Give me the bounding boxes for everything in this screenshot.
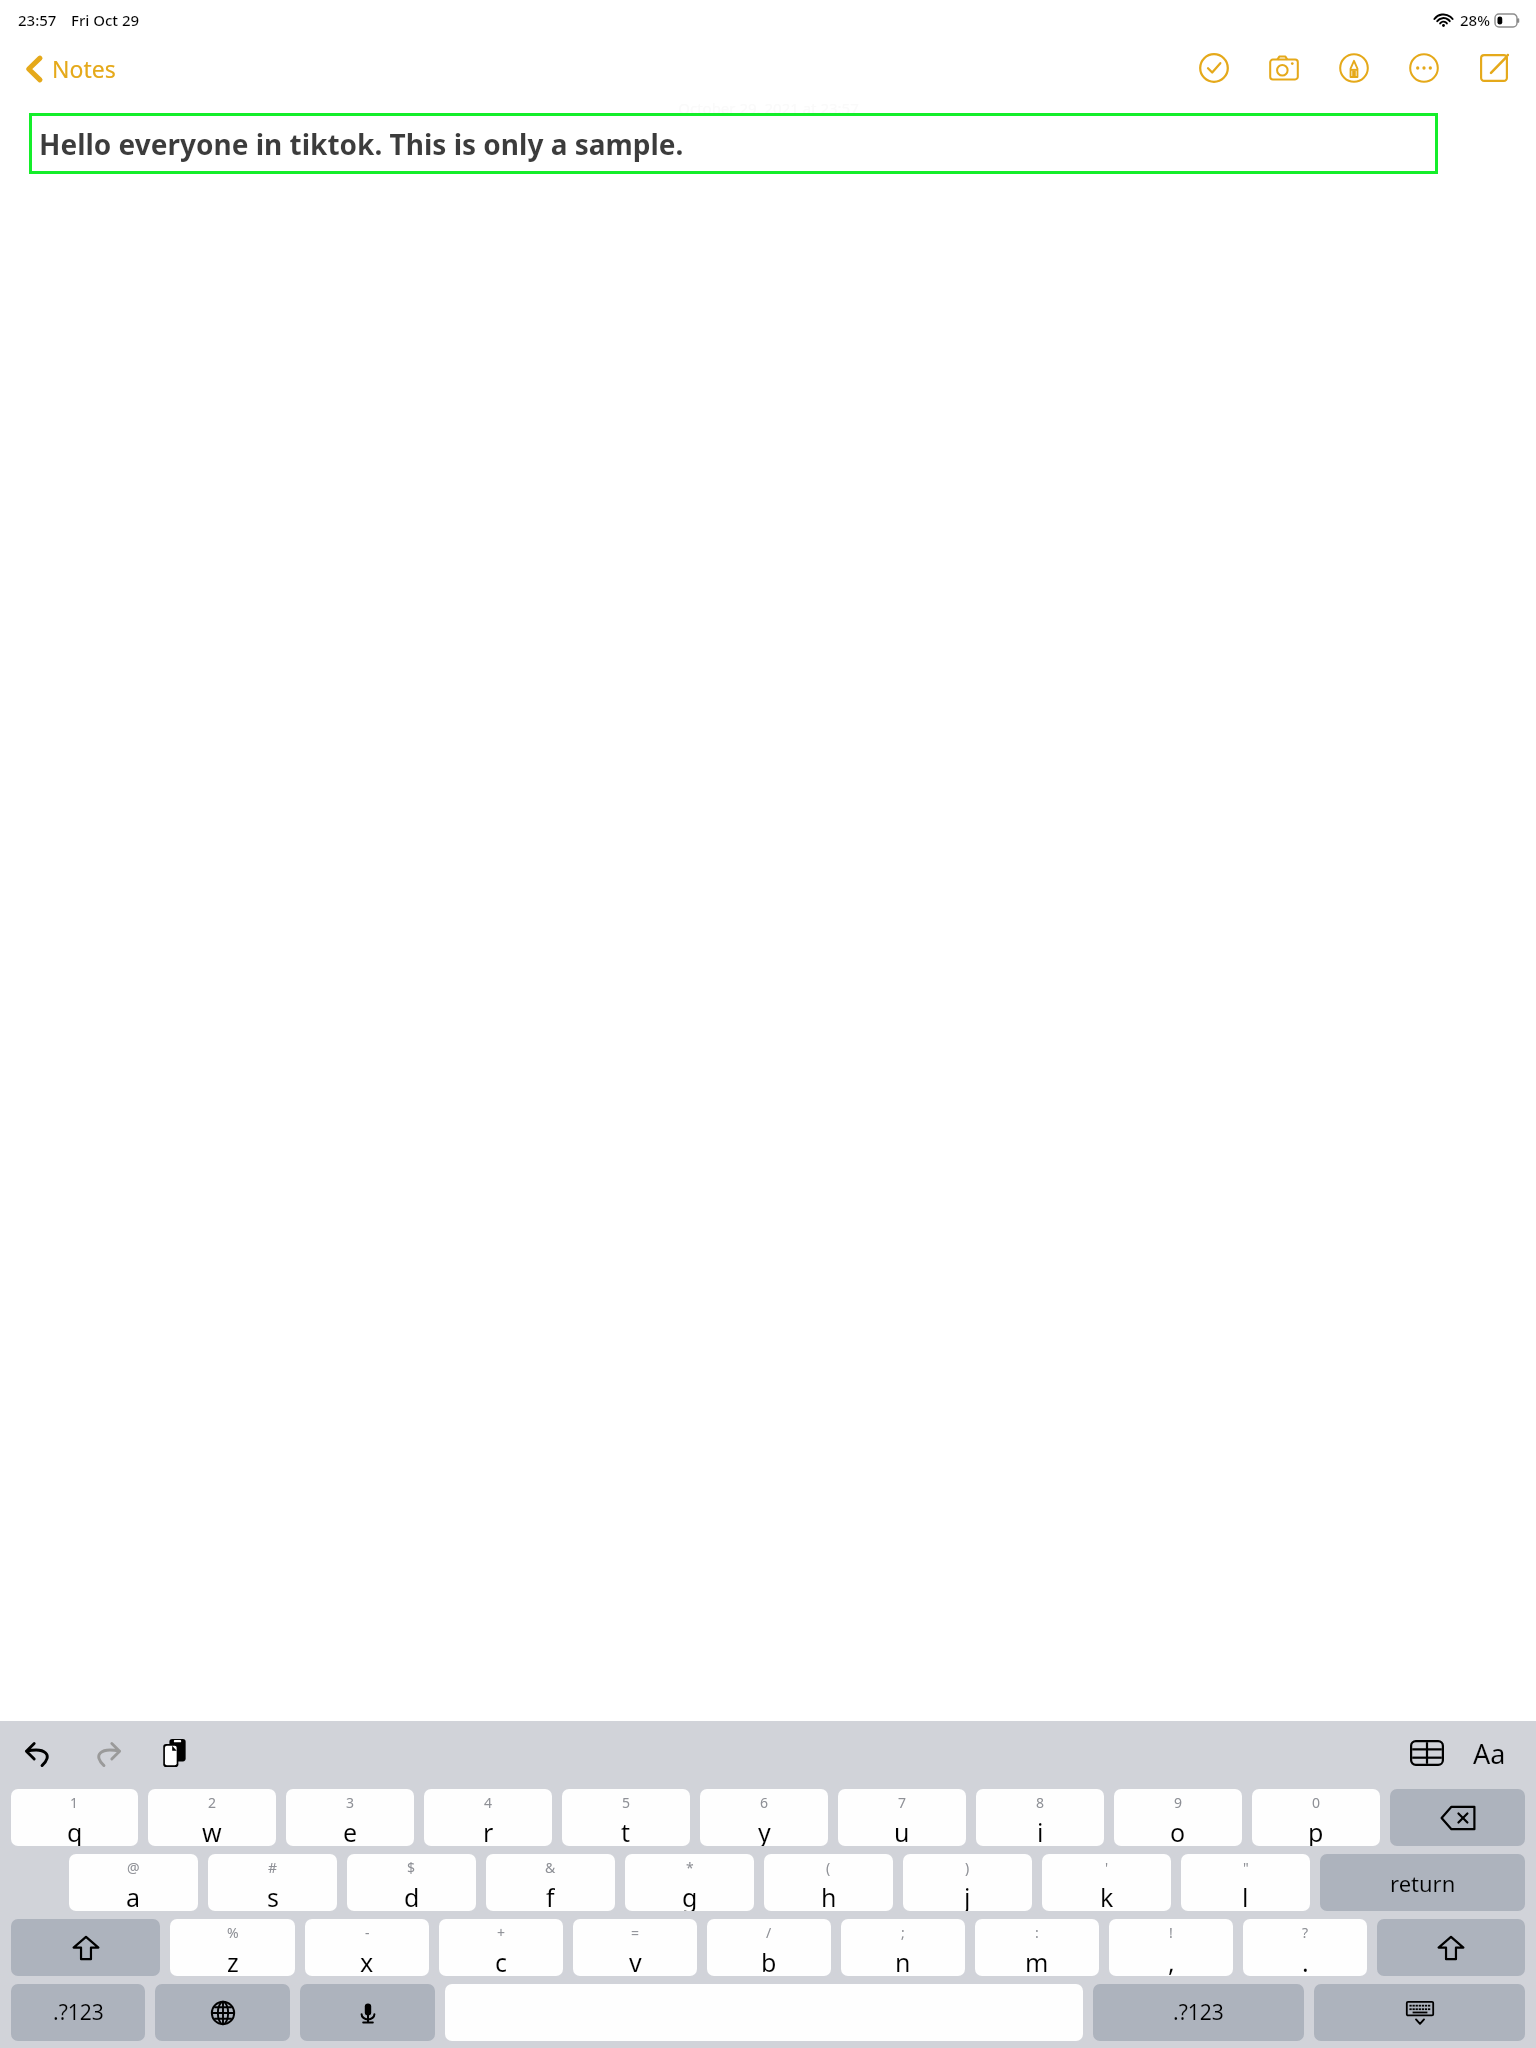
button[interactable]: *: [625, 1854, 754, 1911]
staticText: Notes: [52, 53, 116, 84]
button[interactable]: 0: [1252, 1789, 1380, 1846]
staticText: t: [621, 1815, 631, 1846]
button[interactable]: -: [305, 1919, 429, 1976]
staticText: f: [546, 1880, 555, 1911]
button[interactable]: Compose: [1474, 48, 1514, 88]
staticText: ": [1243, 1858, 1249, 1877]
staticText: .?123: [1173, 1998, 1224, 2027]
button[interactable]: Redo: [84, 1730, 130, 1776]
staticText: g: [682, 1880, 698, 1911]
staticText: ?: [1302, 1923, 1309, 1942]
staticText: s: [267, 1880, 279, 1911]
button[interactable]: #: [208, 1854, 337, 1911]
staticText: o: [1170, 1815, 1186, 1846]
staticText: &: [545, 1858, 556, 1877]
button[interactable]: ': [1042, 1854, 1171, 1911]
staticText: 7: [898, 1793, 907, 1812]
staticText: v: [629, 1945, 642, 1976]
button[interactable]: Undo: [16, 1730, 62, 1776]
staticText: 28%: [1460, 10, 1490, 30]
button[interactable]: .?123: [11, 1984, 145, 2041]
button[interactable]: 1: [11, 1789, 138, 1846]
staticText: m: [1025, 1945, 1049, 1976]
staticText: Hello everyone in tiktok. This is only a…: [39, 125, 684, 163]
button[interactable]: return: [1320, 1854, 1525, 1911]
staticText: (: [826, 1858, 831, 1877]
button[interactable]: 8: [976, 1789, 1104, 1846]
staticText: Aa: [1473, 1735, 1506, 1772]
staticText: c: [495, 1945, 508, 1976]
staticText: 5: [622, 1793, 631, 1812]
button[interactable]: /: [707, 1919, 831, 1976]
button[interactable]: Change keyboard: [155, 1984, 290, 2041]
staticText: i: [1037, 1815, 1044, 1846]
staticText: Fri Oct 29: [71, 10, 140, 30]
staticText: 23:57: [18, 10, 57, 30]
staticText: a: [126, 1880, 141, 1911]
button[interactable]: Shift: [11, 1919, 160, 1976]
button[interactable]: ": [1181, 1854, 1310, 1911]
staticText: $: [407, 1858, 416, 1877]
staticText: .: [1302, 1945, 1309, 1976]
button[interactable]: ;: [841, 1919, 965, 1976]
staticText: j: [964, 1880, 971, 1911]
button[interactable]: @: [69, 1854, 198, 1911]
button[interactable]: %: [170, 1919, 295, 1976]
button[interactable]: .?123: [1093, 1984, 1304, 2041]
button[interactable]: Shift: [1377, 1919, 1525, 1976]
staticText: .?123: [53, 1998, 104, 2027]
staticText: @: [127, 1858, 140, 1877]
button[interactable]: 7: [838, 1789, 966, 1846]
button[interactable]: Camera: [1264, 48, 1304, 88]
button[interactable]: 5: [562, 1789, 690, 1846]
button[interactable]: 4: [424, 1789, 552, 1846]
staticText: +: [497, 1923, 506, 1942]
button[interactable]: +: [439, 1919, 563, 1976]
staticText: return: [1390, 1868, 1456, 1898]
staticText: h: [821, 1880, 837, 1911]
button[interactable]: More: [1404, 48, 1444, 88]
button[interactable]: =: [573, 1919, 697, 1976]
staticText: z: [227, 1945, 239, 1976]
staticText: ': [1105, 1858, 1109, 1877]
button[interactable]: $: [347, 1854, 476, 1911]
button[interactable]: ?: [1243, 1919, 1367, 1976]
button[interactable]: Markup: [1334, 48, 1374, 88]
staticText: ): [965, 1858, 970, 1877]
staticText: 3: [346, 1793, 355, 1812]
staticText: 0: [1312, 1793, 1321, 1812]
staticText: w: [202, 1815, 222, 1846]
staticText: q: [67, 1815, 83, 1846]
button[interactable]: Checklist: [1194, 48, 1234, 88]
button[interactable]: 3: [286, 1789, 414, 1846]
staticText: *: [686, 1858, 694, 1877]
button[interactable]: &: [486, 1854, 615, 1911]
button[interactable]: Delete: [1390, 1789, 1525, 1846]
button[interactable]: Hello everyone in tiktok. This is only a…: [29, 113, 1438, 174]
button[interactable]: Paste: [152, 1730, 198, 1776]
staticText: r: [483, 1815, 494, 1846]
staticText: 2: [208, 1793, 217, 1812]
staticText: y: [758, 1815, 771, 1846]
button[interactable]: 9: [1114, 1789, 1242, 1846]
button[interactable]: (: [764, 1854, 893, 1911]
staticText: =: [631, 1923, 640, 1942]
button[interactable]: Insert table: [1402, 1728, 1452, 1778]
button[interactable]: ): [903, 1854, 1032, 1911]
button[interactable]: :: [975, 1919, 1099, 1976]
staticText: October 29, 2021 at 23:57: [678, 98, 859, 118]
staticText: 9: [1174, 1793, 1183, 1812]
button[interactable]: !: [1109, 1919, 1233, 1976]
staticText: b: [761, 1945, 777, 1976]
button[interactable]: Dictate: [300, 1984, 435, 2041]
staticText: e: [343, 1815, 358, 1846]
staticText: !: [1169, 1923, 1173, 1942]
button[interactable]: 2: [148, 1789, 276, 1846]
staticText: /: [766, 1923, 772, 1942]
button[interactable]: Aa: [1462, 1726, 1516, 1780]
button[interactable]: 6: [700, 1789, 828, 1846]
button[interactable]: Notes: [26, 53, 116, 84]
staticText: p: [1308, 1815, 1324, 1846]
button[interactable]: Hide keyboard: [1314, 1984, 1525, 2041]
